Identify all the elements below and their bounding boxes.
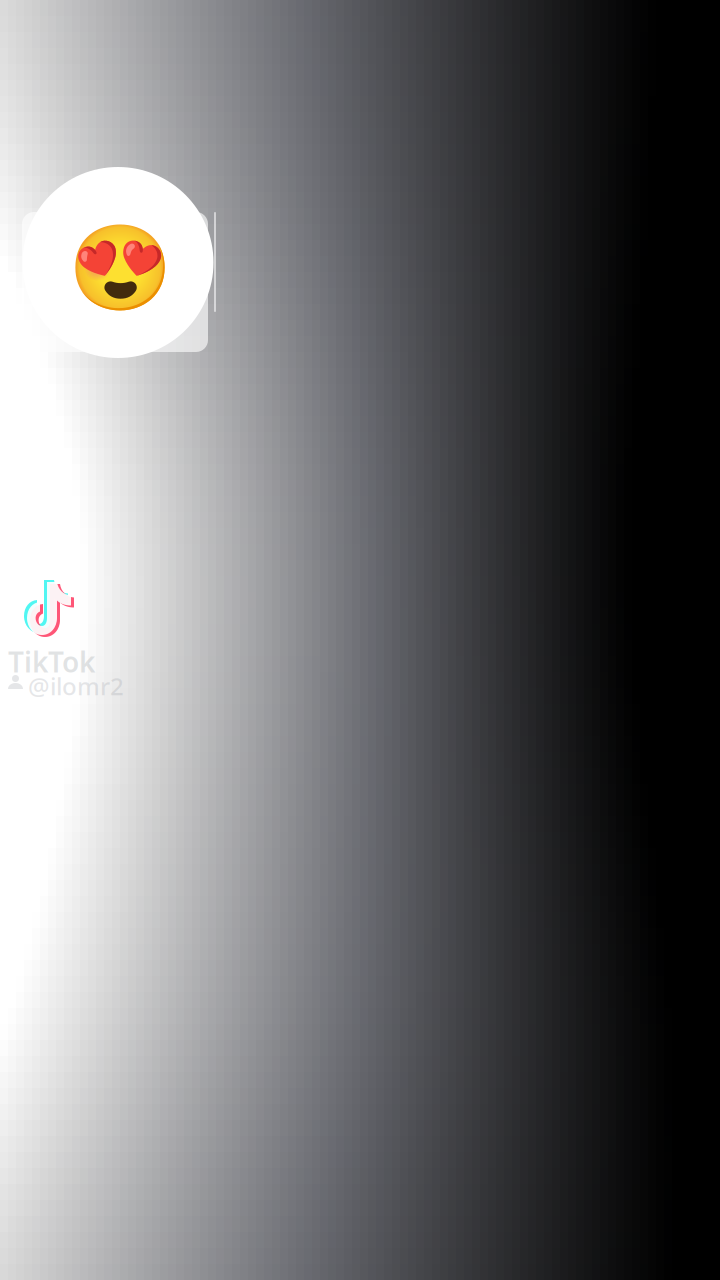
staticText: 😍 <box>68 220 173 316</box>
staticText: @ilomr2 <box>28 670 124 702</box>
staticText: TikTok <box>8 643 95 680</box>
